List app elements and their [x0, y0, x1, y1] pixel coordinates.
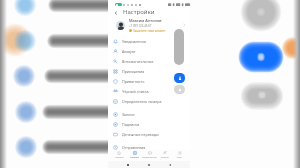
staticText: Приватность [122, 79, 145, 84]
button[interactable]: Уведомления [142, 150, 157, 161]
button[interactable]: Scroll [174, 29, 184, 65]
staticText: Чёрный список [122, 89, 149, 94]
button[interactable]: Приватность [113, 76, 190, 86]
staticText: Определитель номера [122, 99, 162, 104]
button[interactable]: Подписки [113, 119, 190, 129]
button[interactable]: Чёрный список [113, 86, 190, 96]
button[interactable]: Уведомления [113, 36, 190, 46]
button[interactable]: Back [112, 9, 119, 16]
staticText: Настройки [123, 8, 155, 16]
button[interactable]: Ещё [172, 150, 187, 161]
staticText: Приложения [122, 69, 145, 74]
button[interactable]: Assistant [174, 73, 185, 83]
button[interactable]: More [174, 85, 185, 94]
button[interactable]: Сервисы [127, 150, 142, 161]
button[interactable]: Аккаунт [113, 46, 190, 56]
button[interactable]: Вспомогательные [113, 56, 190, 66]
staticText: Ещё [177, 156, 182, 159]
staticText: Сервисы [130, 156, 140, 159]
staticText: Уведомления [122, 39, 146, 44]
button[interactable]: Максим Антонов [116, 18, 186, 32]
staticText: Вспомогательные [122, 59, 154, 64]
staticText: Защитите свой аккаунт [133, 29, 166, 32]
button[interactable]: Звонки [157, 150, 172, 161]
staticText: Максим Антонов [129, 18, 162, 23]
button[interactable]: Определитель номера [113, 96, 190, 106]
staticText: Денежные переводы [122, 132, 159, 137]
button[interactable]: Приложения [113, 66, 190, 76]
staticText: +7 999 123-45-67 [129, 24, 152, 28]
staticText: Подписки [122, 122, 140, 127]
staticText: Записи [122, 112, 135, 117]
button[interactable]: Записи [113, 109, 190, 119]
staticText: Уведомления [142, 156, 157, 159]
button[interactable]: Отправления [113, 142, 190, 152]
button[interactable]: Главная [111, 150, 127, 161]
staticText: Главная [115, 156, 124, 159]
staticText: Отправления [122, 145, 146, 150]
staticText: Звонки [161, 156, 169, 159]
button[interactable]: Денежные переводы [113, 129, 190, 139]
staticText: Аккаунт [122, 49, 136, 54]
